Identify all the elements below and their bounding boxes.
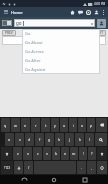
button[interactable]: Go [22,29,100,38]
button[interactable]: . [77,161,86,174]
button[interactable]: p [87,118,95,132]
button[interactable]: Go About [22,38,100,47]
button[interactable]: a [5,133,14,146]
staticText: q [4,123,7,128]
button[interactable]: d [25,133,34,146]
staticText: v [46,151,48,156]
button[interactable]: Search [95,133,107,146]
button[interactable]: b [52,147,60,160]
button[interactable]: m [70,147,78,160]
button[interactable]: Account [93,8,100,17]
staticText: w [14,123,17,128]
staticText: Go After [25,58,41,63]
button[interactable]: Shift [1,147,12,160]
button[interactable] [2,36,106,45]
button[interactable]: ?123 [1,161,13,174]
button[interactable]: x [23,147,32,160]
staticText: . [81,165,82,170]
staticText: , [91,165,92,170]
staticText: ! [83,151,84,156]
staticText: Go Against [25,67,46,72]
button[interactable]: Enter [97,161,107,174]
button[interactable]: t [41,118,50,132]
staticText: z [17,151,19,156]
staticText: r [35,123,37,128]
button[interactable]: go [14,19,95,27]
staticText: l [89,137,90,142]
staticText: e [24,123,27,128]
button[interactable]: NEXT [92,30,106,36]
button[interactable]: , [87,161,96,174]
button[interactable]: w [11,118,20,132]
button[interactable]: Go Against [22,65,100,74]
button[interactable]: Toggle [2,20,12,26]
button[interactable]: Go Across [22,47,100,56]
button[interactable]: ? [88,147,96,160]
button[interactable]: Settings [85,8,92,17]
staticText: j [69,137,70,142]
staticText: f [39,137,41,142]
button[interactable]: v [43,147,51,160]
staticText: Go Across [25,49,44,54]
button[interactable]: j [65,133,74,146]
button[interactable]: PREV [2,30,16,36]
staticText: ? [91,151,93,156]
staticText: d [28,137,31,142]
button[interactable]: Recents [78,175,92,184]
button[interactable]: c [33,147,42,160]
staticText: o [81,123,84,128]
button[interactable]: Menu [2,8,10,16]
staticText: x [27,151,29,156]
button[interactable]: ! [79,147,87,160]
button[interactable]: Voice input [14,161,23,174]
staticText: u [63,123,66,128]
staticText: PREV [5,31,13,35]
button[interactable]: r [31,118,40,132]
button[interactable]: Backspace [96,118,107,132]
staticText: ?123 [4,166,11,170]
button[interactable]: Home [47,175,61,184]
button[interactable]: g [45,133,54,146]
staticText: h [58,137,61,142]
button[interactable]: n [61,147,69,160]
staticText: Go About [25,40,43,45]
staticText: go [16,20,22,26]
button[interactable]: l [85,133,94,146]
button[interactable]: Go After [22,56,100,65]
button[interactable]: Shift right [97,147,107,160]
staticText: m [72,151,76,156]
button[interactable]: z [13,147,22,160]
button[interactable]: / [24,161,33,174]
button[interactable]: Account [97,19,106,28]
button[interactable]: s [15,133,24,146]
staticText: a [8,137,11,142]
button[interactable]: Home [69,8,76,17]
button[interactable]: q [1,118,10,132]
button[interactable]: More options [101,8,106,17]
staticText: g [48,137,51,142]
button[interactable]: k [75,133,84,146]
staticText: y [54,123,56,128]
staticText: / [28,165,30,170]
staticText: i [73,123,74,128]
staticText: p [90,123,93,128]
button[interactable]: h [55,133,64,146]
button[interactable]: y [51,118,59,132]
button[interactable]: Back [17,175,31,184]
staticText: 4:08 PM [94,2,106,6]
button[interactable]: Messages [77,8,84,17]
button[interactable]: i [69,118,77,132]
staticText: s [19,137,21,142]
staticText: b [55,151,58,156]
staticText: Go [25,31,31,36]
button[interactable]: u [60,118,68,132]
button[interactable]: o [78,118,86,132]
button[interactable]: f [35,133,44,146]
button[interactable]: e [21,118,30,132]
staticText: t [45,123,47,128]
staticText: n [64,151,67,156]
button[interactable]: Clear [90,22,93,25]
staticText: k [79,137,81,142]
staticText: Home [11,10,23,15]
